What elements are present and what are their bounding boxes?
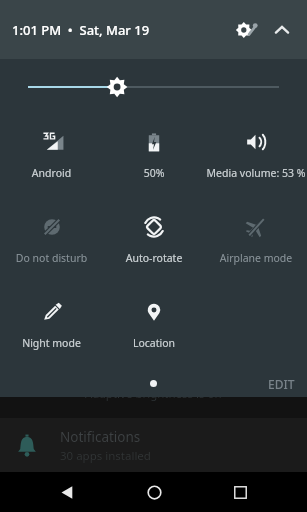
staticText: Auto-rotate — [103, 251, 205, 265]
button[interactable]: Brightness — [0, 59, 307, 115]
button[interactable]: Notifications — [0, 418, 307, 474]
button[interactable]: Media volume: 53 % — [205, 115, 307, 200]
button[interactable]: Night mode — [0, 285, 103, 370]
staticText: Adaptive brightness is on — [85, 386, 222, 402]
button[interactable]: Collapse — [269, 17, 295, 43]
button[interactable]: EDIT — [268, 376, 295, 392]
staticText: Media volume: 53 % — [205, 166, 307, 180]
staticText: Do not disturb — [0, 251, 103, 265]
staticText: Notifications — [60, 428, 141, 446]
button[interactable]: Android — [0, 115, 103, 200]
staticText: Android — [0, 166, 103, 180]
button[interactable]: Home — [134, 472, 174, 512]
staticText: 50% — [103, 166, 205, 180]
button[interactable]: Auto-rotate — [103, 200, 205, 285]
staticText: 1:01 PM • Sat, Mar 19 — [12, 21, 150, 39]
button[interactable]: 50% — [103, 115, 205, 200]
staticText: Location — [103, 336, 205, 350]
button[interactable]: Airplane mode — [205, 200, 307, 285]
button[interactable]: Location — [103, 285, 205, 370]
button[interactable]: Do not disturb — [0, 200, 103, 285]
staticText: Night mode — [0, 336, 103, 350]
button[interactable]: Settings — [231, 15, 261, 45]
staticText: EDIT — [268, 376, 295, 392]
button[interactable]: Back — [47, 472, 87, 512]
staticText: 30 apps installed — [60, 448, 151, 464]
staticText: Airplane mode — [205, 251, 307, 265]
button[interactable]: Recent apps — [220, 472, 260, 512]
